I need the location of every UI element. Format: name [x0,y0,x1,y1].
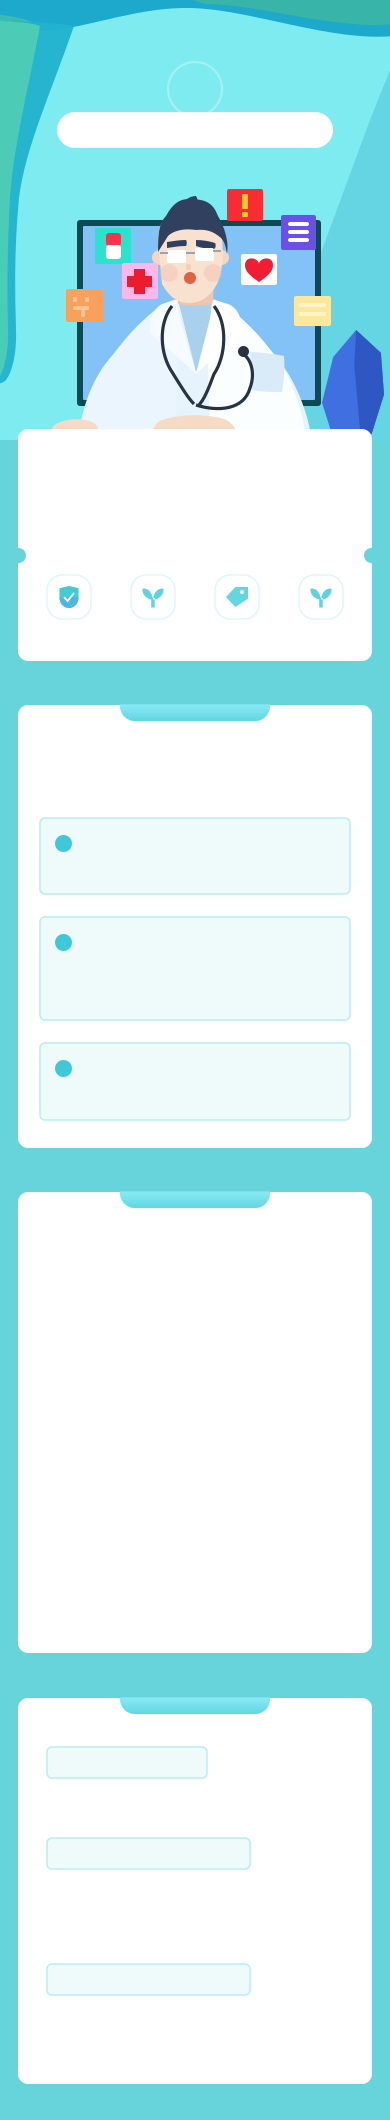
button[interactable]: Search [57,112,333,148]
button[interactable]: Services [131,575,175,619]
button[interactable]: Offers [215,575,259,619]
button[interactable]: Services [299,575,343,619]
button[interactable]: Verified [47,575,91,619]
